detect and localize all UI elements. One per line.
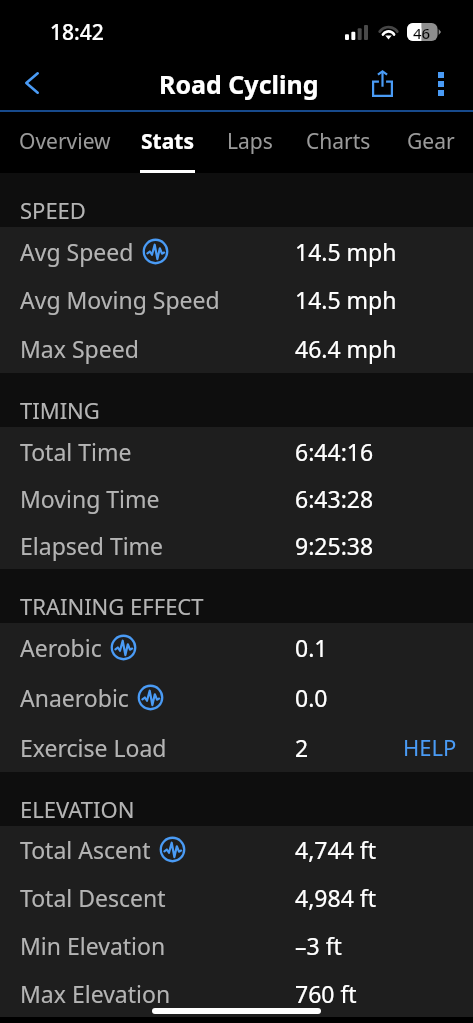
staticText: TRAINING EFFECT xyxy=(20,591,204,621)
button[interactable]: Total Ascent xyxy=(0,826,473,873)
button[interactable]: Stats xyxy=(141,127,194,156)
staticText: Aerobic xyxy=(20,632,102,663)
button[interactable]: Max Speed xyxy=(0,324,473,373)
staticText: Avg Moving Speed xyxy=(20,284,220,315)
button[interactable]: Aerobic xyxy=(0,623,473,672)
button[interactable]: HELP xyxy=(387,722,473,772)
staticText: 4,744 ft xyxy=(295,834,376,865)
staticText: Total Ascent xyxy=(20,834,151,865)
staticText: 0.1 xyxy=(295,632,328,663)
button[interactable]: Share xyxy=(356,55,408,110)
staticText: Road Cycling xyxy=(159,67,319,101)
button[interactable]: Total Time xyxy=(0,427,473,475)
button[interactable]: Moving Time xyxy=(0,475,473,522)
staticText: –3 ft xyxy=(295,930,342,961)
button[interactable]: Elapsed Time xyxy=(0,522,473,569)
staticText: 46.4 mph xyxy=(295,333,397,364)
staticText: 4,984 ft xyxy=(295,882,376,913)
button[interactable]: Anaerobic xyxy=(0,672,473,722)
staticText: 46 xyxy=(413,23,431,41)
staticText: Elapsed Time xyxy=(20,530,164,561)
staticText: 18:42 xyxy=(50,18,104,47)
button[interactable]: Exercise Load xyxy=(0,722,473,772)
staticText: Anaerobic xyxy=(20,682,129,713)
button[interactable]: Back xyxy=(0,55,58,110)
button[interactable]: Charts xyxy=(306,127,371,156)
staticText: Max Speed xyxy=(20,333,139,364)
staticText: Gear xyxy=(407,127,455,156)
staticText: TIMING xyxy=(20,395,100,425)
button[interactable]: Total Descent xyxy=(0,873,473,921)
staticText: 6:44:16 xyxy=(295,436,374,467)
staticText: Overview xyxy=(19,127,111,156)
staticText: HELP xyxy=(403,732,457,762)
button[interactable]: Laps xyxy=(227,127,273,156)
staticText: Exercise Load xyxy=(20,732,167,763)
staticText: Charts xyxy=(306,127,371,156)
staticText: 760 ft xyxy=(295,978,357,1009)
button[interactable]: Avg Moving Speed xyxy=(0,275,473,324)
staticText: SPEED xyxy=(20,195,86,225)
staticText: 6:43:28 xyxy=(295,483,374,514)
staticText: 9:25:38 xyxy=(295,530,374,561)
staticText: 14.5 mph xyxy=(295,284,397,315)
staticText: 2 xyxy=(295,732,309,763)
button[interactable]: More options xyxy=(418,55,464,110)
staticText: Laps xyxy=(227,127,273,156)
staticText: 14.5 mph xyxy=(295,236,397,267)
staticText: Max Elevation xyxy=(20,978,171,1009)
button[interactable]: Overview xyxy=(19,127,111,156)
staticText: Total Time xyxy=(20,436,132,467)
staticText: Avg Speed xyxy=(20,236,134,267)
button[interactable]: Min Elevation xyxy=(0,921,473,969)
staticText: 0.0 xyxy=(295,682,328,713)
button[interactable]: Max Elevation xyxy=(0,969,473,1017)
staticText: Moving Time xyxy=(20,483,160,514)
staticText: ELEVATION xyxy=(20,794,135,824)
staticText: Stats xyxy=(141,127,194,156)
button[interactable]: Gear xyxy=(407,127,455,156)
staticText: Min Elevation xyxy=(20,930,166,961)
staticText: Total Descent xyxy=(20,882,166,913)
button[interactable]: Avg Speed xyxy=(0,227,473,275)
